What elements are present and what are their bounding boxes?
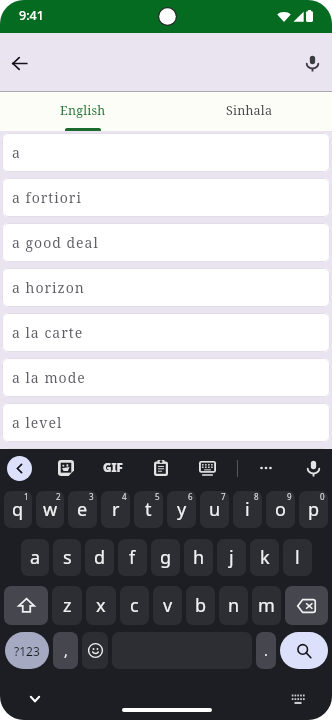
staticText: m bbox=[258, 593, 275, 618]
button[interactable]: Emoji bbox=[82, 632, 108, 669]
button[interactable]: a little bbox=[2, 448, 330, 487]
staticText: a la mode bbox=[12, 368, 86, 387]
button[interactable]: a la mode bbox=[2, 358, 330, 397]
staticText: a la carte bbox=[12, 323, 84, 342]
staticText: k bbox=[260, 545, 270, 570]
staticText: a bbox=[30, 545, 41, 570]
button[interactable]: a fortiori bbox=[2, 178, 330, 217]
staticText: g bbox=[160, 545, 172, 570]
staticText: 6 bbox=[188, 491, 193, 502]
staticText: o bbox=[275, 497, 286, 522]
button[interactable]: Hide keyboard bbox=[23, 687, 47, 711]
staticText: , bbox=[64, 641, 68, 660]
button[interactable]: i bbox=[233, 491, 262, 528]
button[interactable]: Switch keyboard bbox=[287, 688, 309, 710]
button[interactable]: y bbox=[167, 491, 196, 528]
staticText: Sinhala bbox=[226, 102, 273, 119]
button[interactable]: a level bbox=[2, 403, 330, 442]
button[interactable]: a horizon bbox=[2, 268, 330, 307]
button[interactable]: Previous bbox=[7, 456, 32, 481]
button[interactable]: Search bbox=[280, 632, 328, 669]
button[interactable]: k bbox=[250, 539, 279, 576]
button[interactable]: z bbox=[52, 586, 82, 625]
staticText: 5 bbox=[155, 491, 160, 502]
staticText: a horizon bbox=[12, 278, 85, 297]
button[interactable]: x bbox=[86, 586, 116, 625]
button[interactable]: a bbox=[2, 133, 330, 172]
button[interactable]: ?123 bbox=[5, 632, 49, 669]
staticText: t bbox=[145, 497, 152, 522]
button[interactable]: Keyboard settings bbox=[193, 454, 221, 482]
button[interactable]: English bbox=[0, 92, 166, 131]
button[interactable]: h bbox=[184, 539, 213, 576]
staticText: 2 bbox=[56, 491, 61, 502]
button[interactable]: o bbox=[266, 491, 295, 528]
staticText: 8 bbox=[254, 491, 259, 502]
staticText: 9 bbox=[287, 491, 292, 502]
button[interactable]: Clipboard bbox=[147, 454, 175, 482]
button[interactable]: e bbox=[68, 491, 97, 528]
staticText: English bbox=[60, 102, 106, 119]
staticText: a lot bbox=[12, 503, 46, 522]
staticText: p bbox=[308, 497, 320, 522]
button[interactable]: a bbox=[21, 539, 49, 576]
button[interactable]: c bbox=[120, 586, 149, 625]
staticText: GIF bbox=[103, 460, 123, 476]
staticText: a little bbox=[12, 458, 63, 477]
button[interactable]: a la carte bbox=[2, 313, 330, 352]
staticText: s bbox=[63, 545, 72, 570]
staticText: a good deal bbox=[12, 233, 99, 252]
button[interactable]: Backspace bbox=[285, 586, 328, 625]
button[interactable]: g bbox=[151, 539, 180, 576]
button[interactable]: q bbox=[4, 491, 32, 528]
button[interactable]: n bbox=[219, 586, 248, 625]
staticText: 3 bbox=[89, 491, 94, 502]
button[interactable]: s bbox=[53, 539, 81, 576]
button[interactable]: l bbox=[283, 539, 312, 576]
staticText: h bbox=[193, 545, 205, 570]
button[interactable]: More options bbox=[252, 454, 280, 482]
button[interactable]: Shift bbox=[4, 586, 48, 625]
staticText: y bbox=[177, 497, 187, 522]
button[interactable]: f bbox=[118, 539, 147, 576]
button[interactable]: j bbox=[217, 539, 246, 576]
button[interactable]: Back bbox=[0, 41, 41, 85]
button[interactable]: , bbox=[53, 632, 78, 669]
staticText: d bbox=[94, 545, 106, 570]
staticText: e bbox=[77, 497, 88, 522]
button[interactable]: p bbox=[299, 491, 328, 528]
staticText: a bbox=[12, 143, 21, 162]
staticText: b bbox=[195, 593, 207, 618]
staticText: v bbox=[163, 593, 173, 618]
button[interactable]: Stickers bbox=[52, 454, 80, 482]
staticText: i bbox=[245, 497, 250, 522]
staticText: . bbox=[264, 641, 268, 660]
button[interactable]: Voice input bbox=[299, 454, 327, 482]
button[interactable]: . bbox=[256, 632, 276, 669]
button[interactable]: v bbox=[153, 586, 182, 625]
staticText: 4 bbox=[122, 491, 127, 502]
button[interactable]: Voice search bbox=[290, 41, 332, 85]
staticText: z bbox=[63, 593, 72, 618]
staticText: ?123 bbox=[14, 643, 40, 659]
staticText: x bbox=[96, 593, 106, 618]
button[interactable]: a lot bbox=[2, 493, 330, 532]
staticText: 1 bbox=[24, 491, 29, 502]
button[interactable]: w bbox=[36, 491, 64, 528]
button[interactable]: r bbox=[101, 491, 130, 528]
staticText: 9:41 bbox=[19, 7, 44, 24]
staticText: a level bbox=[12, 413, 63, 432]
staticText: u bbox=[209, 497, 221, 522]
button[interactable]: u bbox=[200, 491, 229, 528]
button[interactable]: d bbox=[85, 539, 114, 576]
button[interactable]: t bbox=[134, 491, 163, 528]
button[interactable]: m bbox=[252, 586, 281, 625]
staticText: j bbox=[229, 545, 234, 570]
button[interactable]: Sinhala bbox=[166, 92, 332, 131]
button[interactable]: GIF bbox=[99, 454, 127, 482]
button[interactable]: a good deal bbox=[2, 223, 330, 262]
button[interactable]: b bbox=[186, 586, 215, 625]
staticText: l bbox=[295, 545, 300, 570]
